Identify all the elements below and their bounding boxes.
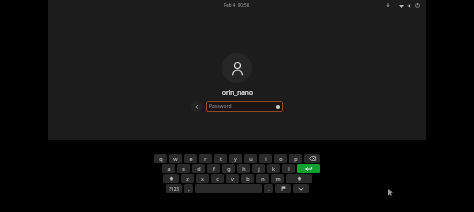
other: Wi-Fi <box>399 4 404 8</box>
button[interactable]: k <box>267 164 280 173</box>
staticText: d <box>197 165 201 172</box>
other: Volume <box>407 4 412 8</box>
button[interactable]: q <box>154 154 167 163</box>
button[interactable]: c <box>211 174 224 183</box>
staticText: i <box>265 155 267 162</box>
button[interactable]: d <box>192 164 205 173</box>
button[interactable]: t <box>214 154 227 163</box>
staticText: s <box>182 165 185 172</box>
button[interactable]: User avatar <box>222 53 252 83</box>
staticText: a <box>167 165 171 172</box>
staticText: k <box>272 165 275 172</box>
button[interactable]: Language <box>275 184 291 193</box>
staticText: m <box>275 175 281 182</box>
button[interactable]: r <box>199 154 212 163</box>
button[interactable]: w <box>169 154 182 163</box>
button[interactable]: Password <box>206 101 283 112</box>
button[interactable]: o <box>274 154 287 163</box>
button[interactable]: v <box>226 174 239 183</box>
staticText: j <box>258 165 260 172</box>
button[interactable]: , <box>184 184 193 193</box>
button[interactable]: Enter <box>297 164 320 173</box>
button[interactable]: Shift <box>286 174 312 183</box>
staticText: x <box>201 175 204 182</box>
staticText: h <box>242 165 246 172</box>
button[interactable]: Backspace <box>304 154 320 163</box>
button[interactable]: u <box>244 154 257 163</box>
button[interactable]: z <box>181 174 194 183</box>
button[interactable]: l <box>282 164 295 173</box>
staticText: f <box>213 165 215 172</box>
staticText: q <box>159 155 163 162</box>
button[interactable]: m <box>271 174 284 183</box>
other: Downloads <box>386 3 390 8</box>
staticText: o <box>279 155 283 162</box>
staticText: b <box>246 175 250 182</box>
staticText: p <box>294 155 298 162</box>
button[interactable]: e <box>184 154 197 163</box>
staticText: n <box>261 175 265 182</box>
button[interactable]: s <box>177 164 190 173</box>
staticText: l <box>288 165 290 172</box>
button[interactable]: Back <box>191 101 202 112</box>
staticText: t <box>220 155 222 162</box>
staticText: u <box>249 155 253 162</box>
staticText: r <box>204 155 207 162</box>
button[interactable]: ?123 <box>166 184 182 193</box>
button[interactable]: i <box>259 154 272 163</box>
staticText: Feb 4 00:56 <box>224 2 250 8</box>
staticText: g <box>227 165 231 172</box>
button[interactable]: x <box>196 174 209 183</box>
button[interactable]: a <box>162 164 175 173</box>
button[interactable]: f <box>207 164 220 173</box>
staticText: z <box>186 175 189 182</box>
staticText: Password <box>209 103 232 110</box>
button[interactable]: h <box>237 164 250 173</box>
staticText: orin_nano <box>222 88 253 97</box>
button[interactable]: . <box>264 184 273 193</box>
staticText: c <box>216 175 219 182</box>
staticText: , <box>188 185 190 192</box>
button[interactable]: b <box>241 174 254 183</box>
staticText: . <box>268 185 270 192</box>
staticText: w <box>173 155 178 162</box>
staticText: e <box>189 155 193 162</box>
button[interactable]: Shift <box>163 174 179 183</box>
button[interactable]: g <box>222 164 235 173</box>
staticText: y <box>234 155 237 162</box>
button[interactable]: Hide keyboard <box>293 184 309 193</box>
staticText: ?123 <box>169 186 179 192</box>
button[interactable]: j <box>252 164 265 173</box>
button[interactable]: Show password <box>276 105 280 109</box>
button[interactable]: n <box>256 174 269 183</box>
other: Power <box>415 3 420 8</box>
button[interactable]: y <box>229 154 242 163</box>
button[interactable]: p <box>289 154 302 163</box>
staticText: v <box>231 175 234 182</box>
